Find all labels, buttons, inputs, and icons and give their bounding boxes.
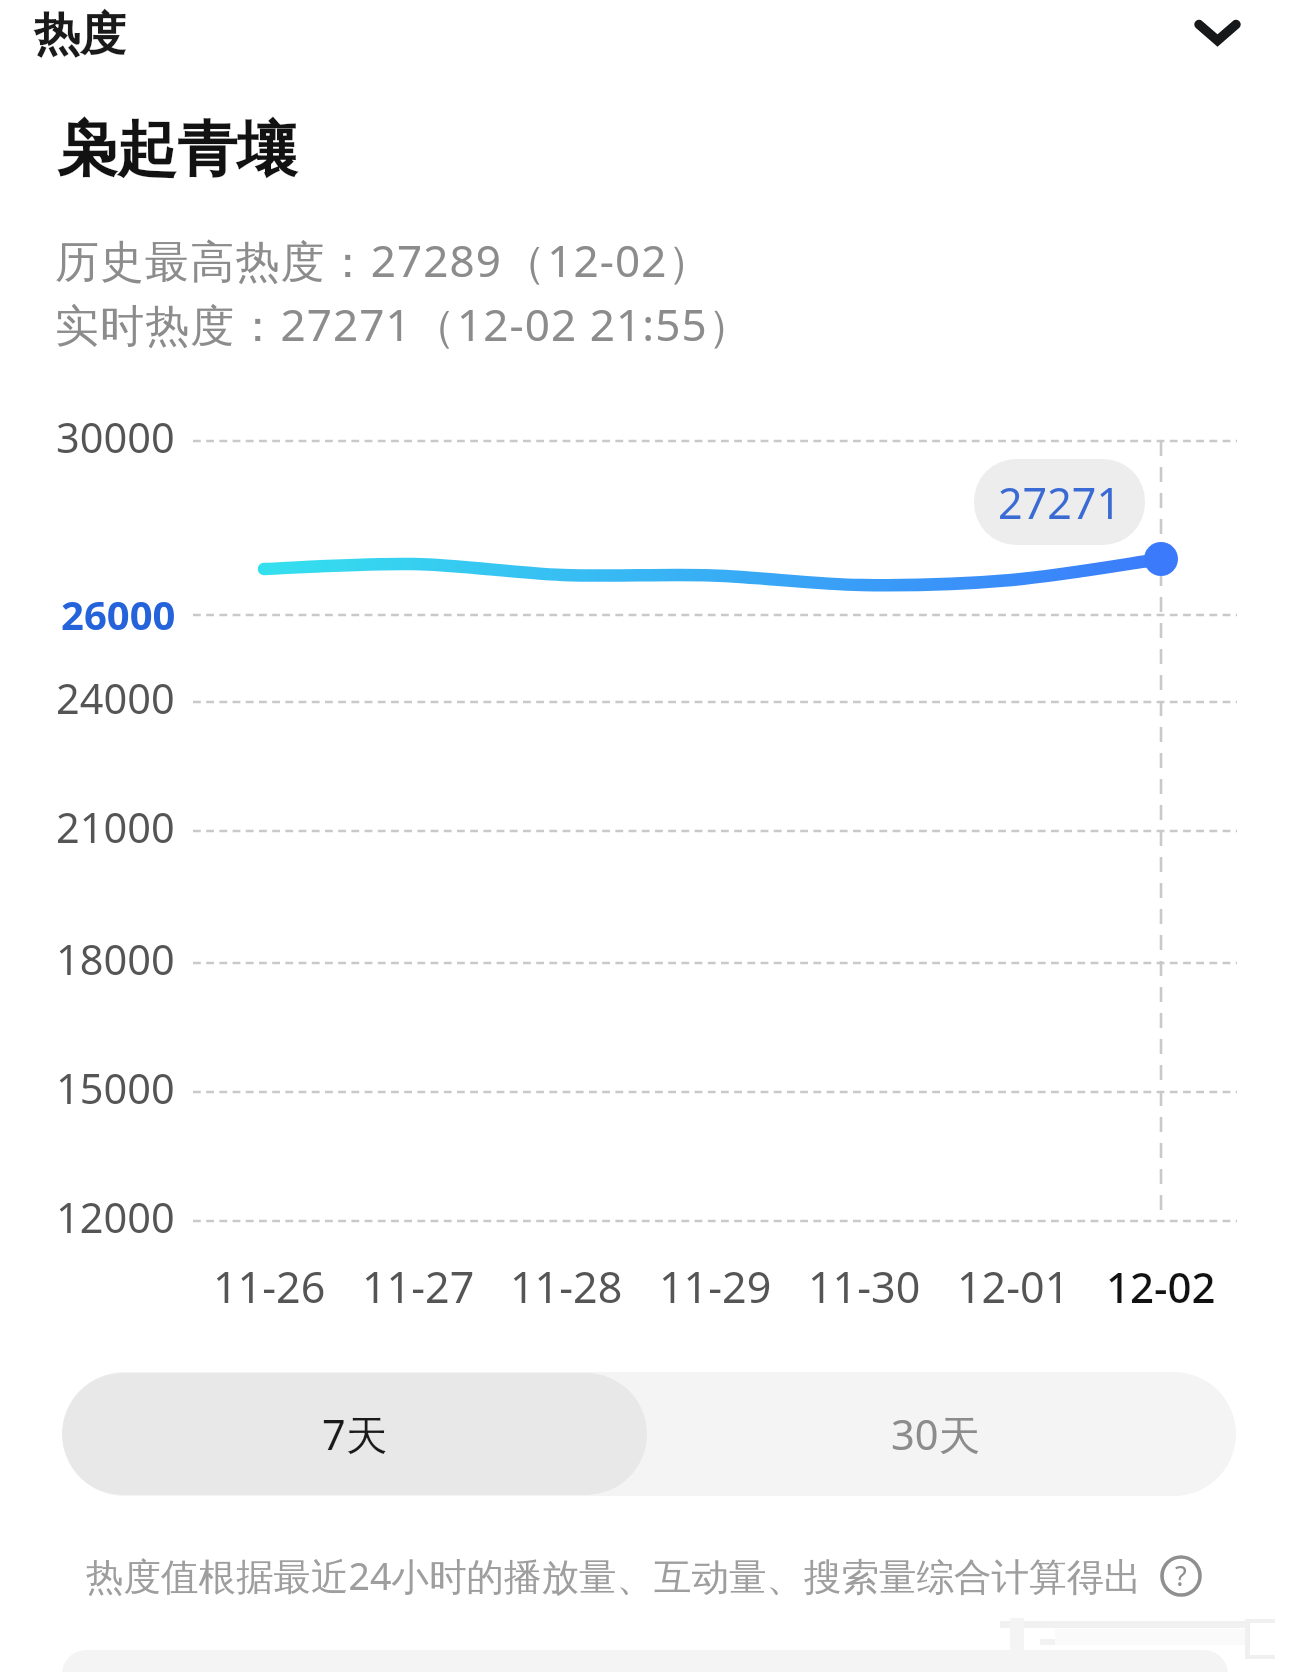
staticText: 历史最高热度：27289（12-02） — [55, 230, 713, 290]
staticText: 30000 — [56, 409, 175, 466]
staticText: 15000 — [56, 1060, 175, 1117]
staticText: 11-26 — [213, 1257, 326, 1316]
staticText: 实时热度：27271（12-02 21:55） — [55, 294, 753, 354]
button[interactable]: Help — [1158, 1553, 1204, 1599]
staticText: 18000 — [56, 931, 175, 988]
staticText: 26000 — [61, 587, 176, 641]
button[interactable]: 30天 — [647, 1372, 1236, 1496]
staticText: 枭起青壤 — [57, 112, 297, 188]
staticText: 11-28 — [510, 1257, 623, 1316]
staticText: ? — [1175, 1557, 1187, 1594]
staticText: 30天 — [891, 1406, 980, 1463]
button[interactable]: 7天 — [62, 1373, 647, 1495]
staticText: 11-30 — [808, 1257, 921, 1316]
staticText: 11-29 — [659, 1257, 772, 1316]
button[interactable]: Collapse — [1173, 0, 1262, 66]
staticText: 12-01 — [957, 1257, 1070, 1316]
staticText: 21000 — [56, 799, 175, 856]
staticText: 27271 — [998, 473, 1121, 532]
staticText: 11-27 — [362, 1257, 475, 1316]
staticText: 12-02 — [1106, 1258, 1216, 1315]
staticText: 热度值根据最近24小时的播放量、互动量、搜索量综合计算得出 — [86, 1550, 1142, 1601]
staticText: 12000 — [56, 1189, 175, 1246]
staticText: 热度 — [34, 6, 126, 64]
staticText: 7天 — [322, 1406, 388, 1463]
staticText: 24000 — [56, 670, 175, 727]
